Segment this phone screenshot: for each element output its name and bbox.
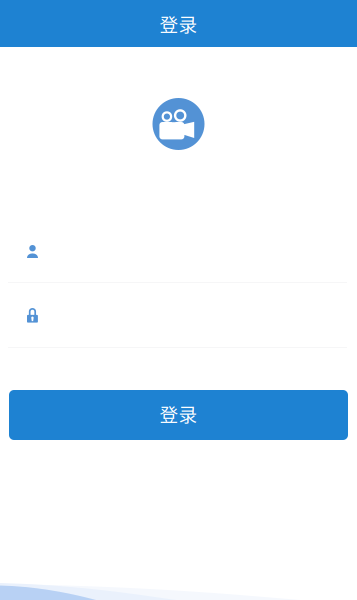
staticText: 登录 [159, 10, 197, 37]
button[interactable]: 登录 [9, 390, 348, 440]
button[interactable]: 用户名 [0, 245, 357, 283]
staticText: 登录 [159, 400, 197, 427]
button[interactable]: 密码 [0, 305, 357, 348]
